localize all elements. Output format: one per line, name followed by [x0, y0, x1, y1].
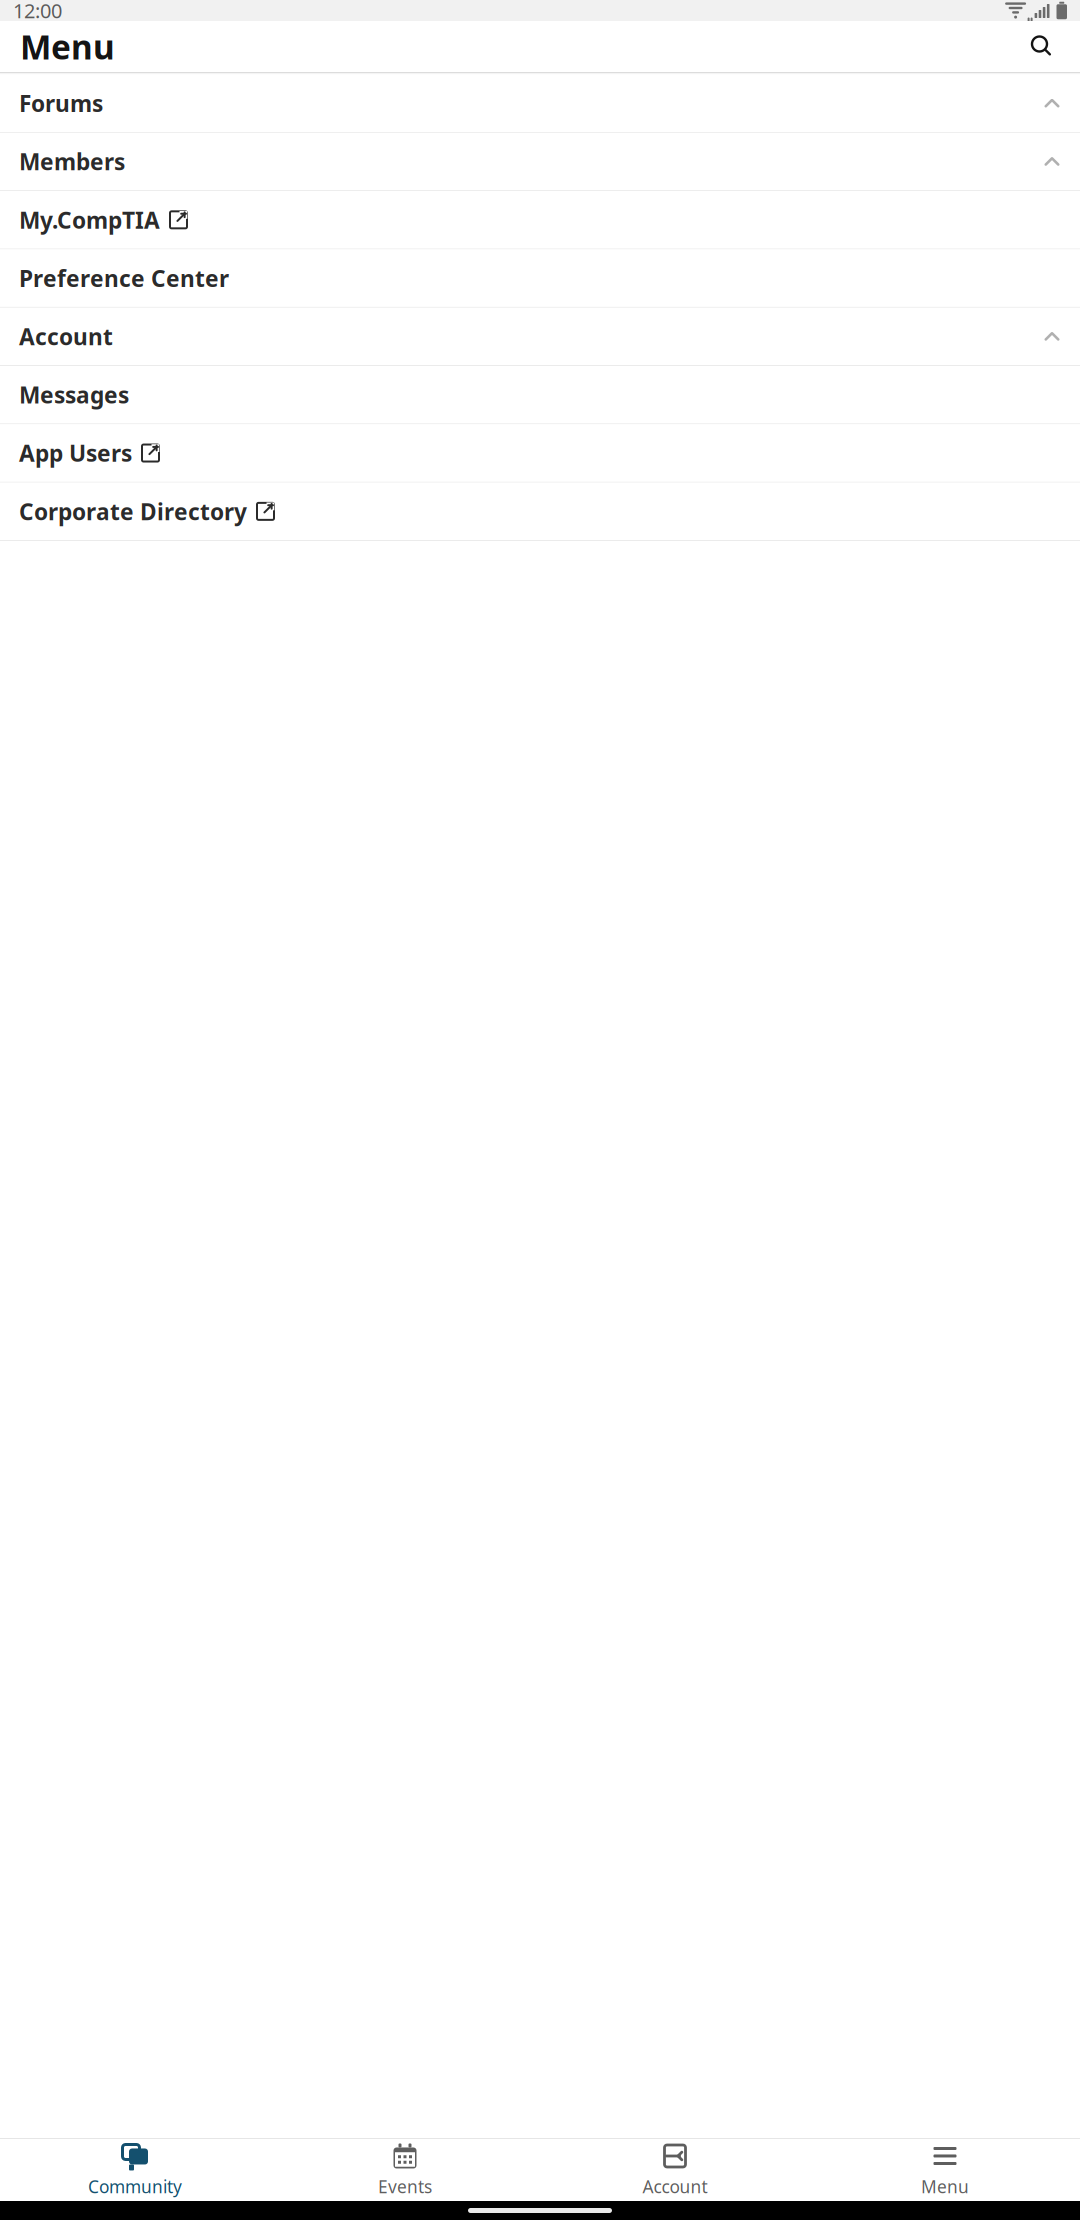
button[interactable]: Forums — [0, 74, 1080, 133]
button[interactable]: App Users — [0, 424, 1080, 483]
button[interactable]: Menu — [810, 2139, 1080, 2201]
button[interactable]: My.CompTIA — [0, 191, 1080, 249]
button[interactable]: Search — [1020, 24, 1064, 68]
staticText: Menu — [20, 24, 115, 69]
staticText: 12:00 — [13, 0, 62, 24]
staticText: App Users — [19, 438, 132, 468]
staticText: Messages — [19, 380, 129, 410]
staticText: My.CompTIA — [19, 205, 160, 235]
button[interactable]: Community — [0, 2139, 270, 2201]
staticText: Forums — [19, 88, 103, 118]
button[interactable]: Preference Center — [0, 249, 1080, 308]
button[interactable]: Account — [540, 2139, 810, 2201]
staticText: Corporate Directory — [19, 496, 247, 526]
staticText: Community — [88, 2175, 182, 2198]
button[interactable]: Corporate Directory — [0, 483, 1080, 541]
staticText: Preference Center — [19, 263, 229, 293]
staticText: Menu — [921, 2175, 969, 2198]
staticText: Account — [19, 321, 113, 351]
button[interactable]: Messages — [0, 366, 1080, 424]
button[interactable]: Events — [270, 2139, 540, 2201]
staticText: Members — [19, 146, 125, 177]
staticText: Events — [378, 2175, 432, 2198]
button[interactable]: Account — [0, 308, 1080, 366]
staticText: Account — [642, 2175, 707, 2198]
button[interactable]: Members — [0, 133, 1080, 191]
